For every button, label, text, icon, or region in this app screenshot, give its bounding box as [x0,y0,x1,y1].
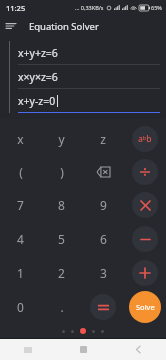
staticText: ) [60,164,64,180]
button[interactable]: Open navigation menu [0,15,22,37]
button[interactable]: Equals [82,290,124,324]
button[interactable]: x×y×z=6 [18,65,160,88]
button[interactable]: Multiply [132,192,158,218]
staticText: x×y×z=6 [18,70,58,84]
staticText: 6 [100,231,107,247]
staticText: x [17,131,24,147]
staticText: 9 [100,197,107,213]
staticText: . [60,299,64,315]
button[interactable]: x+y-z=0 [18,89,160,112]
button[interactable]: Recent apps [0,339,56,360]
staticText: Solve [136,302,155,312]
staticText: 3 [100,265,107,281]
button[interactable]: 5 [41,222,82,256]
staticText: 11:25 [6,3,26,13]
button[interactable]: 0 [0,290,41,324]
button[interactable]: Backspace [82,155,124,188]
button[interactable]: 4 [0,222,41,256]
button[interactable]: ( [0,155,41,188]
staticText: 7 [17,197,24,213]
button[interactable]: Solve [129,291,161,323]
staticText: ... 0,33KB/s [75,4,104,11]
button[interactable]: 6 [82,222,124,256]
staticText: ( [19,164,23,180]
staticText: 1 [17,265,24,281]
staticText: 4 [17,231,24,247]
staticText: 0 [17,299,24,315]
button[interactable]: Power [132,126,158,152]
staticText: 8 [58,197,65,213]
button[interactable]: 8 [41,188,82,222]
button[interactable]: y [41,122,82,155]
button[interactable]: x+y+z=6 [18,41,160,64]
staticText: 5 [58,231,65,247]
button[interactable]: . [41,290,82,324]
button[interactable]: 7 [0,188,41,222]
button[interactable]: Back [111,339,166,360]
button[interactable]: Divide [132,159,158,185]
staticText: z [100,131,106,147]
button[interactable]: z [82,122,124,155]
staticText: x+y-z=0 [18,94,56,108]
button[interactable]: 1 [0,256,41,290]
staticText: Equation Solver [29,20,99,33]
button[interactable]: 2 [41,256,82,290]
button[interactable]: x [0,122,41,155]
button[interactable]: ) [41,155,82,188]
staticText: 2 [58,265,65,281]
button[interactable]: Plus [132,260,158,286]
button[interactable]: Home [56,339,111,360]
button[interactable]: 3 [82,256,124,290]
button[interactable]: 9 [82,188,124,222]
staticText: aᵇb [138,133,152,145]
button[interactable]: Minus [132,226,158,252]
staticText: y [58,131,65,147]
staticText: 65% [151,4,162,11]
staticText: x+y+z=6 [18,46,58,60]
